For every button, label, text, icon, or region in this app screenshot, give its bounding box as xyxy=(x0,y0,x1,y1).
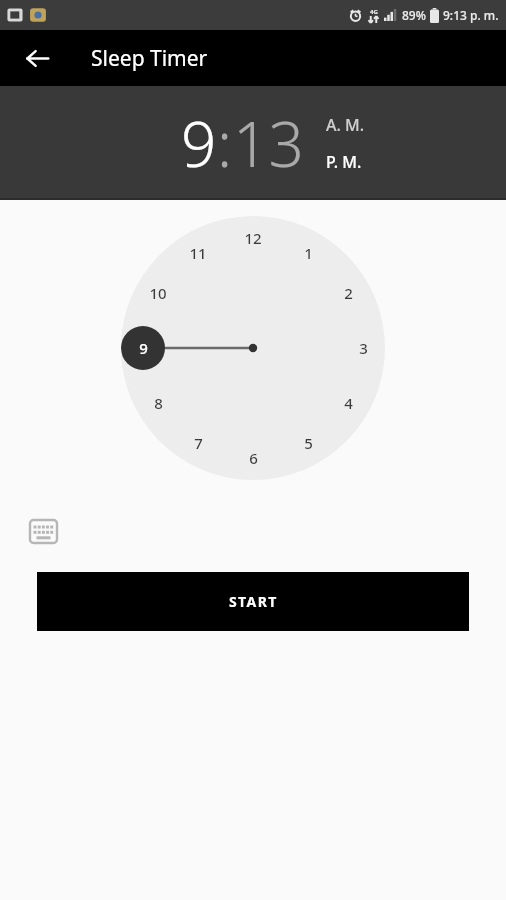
button[interactable]: 12 xyxy=(236,221,270,255)
button[interactable]: 9 xyxy=(126,331,160,365)
staticText: 9 xyxy=(181,101,217,185)
button[interactable]: P. M. xyxy=(326,148,362,176)
button[interactable]: Back xyxy=(13,34,61,82)
button[interactable]: 2 xyxy=(331,276,365,310)
button[interactable]: 9 xyxy=(181,101,217,185)
staticText: 4 xyxy=(344,393,353,413)
button[interactable]: 6 xyxy=(236,441,270,475)
staticText: 89% xyxy=(402,7,426,23)
staticText: 9:13 p. m. xyxy=(443,7,499,23)
staticText: 6 xyxy=(249,448,258,468)
button[interactable]: 3 xyxy=(346,331,380,365)
staticText: : xyxy=(217,101,233,185)
button[interactable]: 1 xyxy=(121,216,385,480)
staticText: 9 xyxy=(139,338,148,358)
button[interactable]: Switch to keyboard input xyxy=(22,510,64,552)
button[interactable]: A. M. xyxy=(326,111,365,139)
button[interactable]: 5 xyxy=(291,426,325,460)
staticText: 3 xyxy=(359,338,368,358)
button[interactable]: 1 xyxy=(291,236,325,270)
staticText: Sleep Timer xyxy=(91,44,208,73)
staticText: 5 xyxy=(304,433,313,453)
staticText: 13 xyxy=(233,101,304,185)
staticText: 7 xyxy=(194,433,203,453)
button[interactable]: 10 xyxy=(141,276,175,310)
staticText: START xyxy=(229,592,278,611)
button[interactable]: 8 xyxy=(141,386,175,420)
button[interactable]: 7 xyxy=(181,426,215,460)
button[interactable]: 13 xyxy=(233,101,304,185)
staticText: A. M. xyxy=(326,114,365,136)
staticText: P. M. xyxy=(326,151,362,173)
staticText: 2 xyxy=(344,283,353,303)
staticText: 12 xyxy=(244,228,262,248)
staticText: 1 xyxy=(304,243,313,263)
staticText: 4G xyxy=(370,8,378,16)
staticText: 11 xyxy=(189,243,207,263)
staticText: 10 xyxy=(149,283,167,303)
staticText: 8 xyxy=(154,393,163,413)
button[interactable]: 11 xyxy=(181,236,215,270)
button[interactable]: START xyxy=(37,572,469,631)
button[interactable]: 4 xyxy=(331,386,365,420)
